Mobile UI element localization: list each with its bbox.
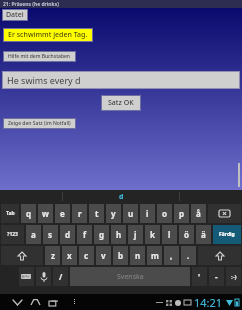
- staticText: q: [26, 208, 32, 219]
- button[interactable]: Svenska: [70, 267, 190, 286]
- button[interactable]: ö: [179, 225, 194, 244]
- staticText: k: [150, 229, 155, 240]
- staticText: :-): [231, 273, 237, 281]
- staticText: b: [118, 250, 124, 261]
- button[interactable]: b: [113, 246, 128, 265]
- button[interactable]: t: [89, 204, 104, 223]
- staticText: c: [84, 250, 89, 261]
- staticText: Datei: [6, 10, 24, 20]
- staticText: p: [179, 208, 185, 219]
- button[interactable]: k: [145, 225, 160, 244]
- button[interactable]: o: [157, 204, 172, 223]
- staticText: -: [215, 271, 218, 282]
- button[interactable]: /: [53, 267, 68, 286]
- button[interactable]: d: [60, 225, 75, 244]
- button[interactable]: ?123: [1, 225, 24, 244]
- button[interactable]: n: [130, 246, 145, 265]
- button[interactable]: Home: [26, 294, 44, 310]
- button[interactable]: Back: [8, 294, 26, 310]
- staticText: /: [59, 271, 63, 282]
- button[interactable]: y: [106, 204, 121, 223]
- staticText: t: [95, 208, 99, 219]
- button[interactable]: ': [192, 267, 207, 286]
- staticText: w: [42, 208, 49, 219]
- button[interactable]: c: [79, 246, 94, 265]
- staticText: s: [48, 229, 53, 240]
- button[interactable]: v: [96, 246, 111, 265]
- staticText: ': [198, 271, 201, 282]
- staticText: ö: [184, 229, 189, 240]
- staticText: l: [168, 229, 171, 240]
- staticText: Färdig: [219, 231, 235, 238]
- button[interactable]: Datei: [2, 9, 28, 21]
- button[interactable]: f: [77, 225, 92, 244]
- staticText: f: [83, 229, 87, 240]
- staticText: ,: [170, 250, 173, 261]
- button[interactable]: Shift: [1, 246, 43, 265]
- button[interactable]: Hilfe mit dem Buchstaben: [3, 51, 76, 62]
- staticText: ä: [201, 229, 206, 240]
- button[interactable]: Färdig: [213, 225, 241, 244]
- button[interactable]: :-): [226, 267, 241, 286]
- button[interactable]: Backspace: [208, 204, 241, 223]
- button[interactable]: e: [55, 204, 70, 223]
- button[interactable]: z: [45, 246, 60, 265]
- staticText: r: [78, 208, 82, 219]
- staticText: d: [65, 229, 71, 240]
- staticText: j: [134, 229, 137, 240]
- button[interactable]: Menu: [68, 296, 80, 308]
- button[interactable]: .: [181, 246, 196, 265]
- button[interactable]: h: [111, 225, 126, 244]
- button[interactable]: ⌨: [19, 267, 34, 286]
- staticText: v: [101, 250, 106, 261]
- staticText: Satz OK: [108, 98, 134, 108]
- staticText: 21: Präsens (he drinks): [3, 1, 59, 8]
- button[interactable]: Zeige den Satz (im Notfall): [3, 118, 76, 129]
- button[interactable]: m: [147, 246, 162, 265]
- staticText: g: [99, 229, 105, 240]
- button[interactable]: Tab: [1, 204, 19, 223]
- button[interactable]: q: [21, 204, 36, 223]
- button[interactable]: j: [128, 225, 143, 244]
- button[interactable]: ,: [164, 246, 179, 265]
- button[interactable]: g: [94, 225, 109, 244]
- staticText: Hilfe mit dem Buchstaben: [8, 53, 71, 60]
- button[interactable]: Er schwimmt jeden Tag.: [3, 28, 93, 42]
- button[interactable]: x: [62, 246, 77, 265]
- staticText: e: [60, 208, 65, 219]
- staticText: x: [67, 250, 72, 261]
- button[interactable]: ä: [196, 225, 211, 244]
- staticText: i: [146, 208, 149, 219]
- button[interactable]: å: [191, 204, 206, 223]
- staticText: 14:21: [194, 295, 223, 310]
- button[interactable]: i: [140, 204, 155, 223]
- staticText: y: [111, 208, 116, 219]
- staticText: a: [31, 229, 36, 240]
- button[interactable]: l: [162, 225, 177, 244]
- staticText: ?123: [7, 231, 18, 238]
- staticText: o: [162, 208, 167, 219]
- staticText: .: [187, 250, 190, 261]
- staticText: Tab: [6, 210, 15, 217]
- staticText: u: [128, 208, 134, 219]
- button[interactable]: a: [26, 225, 41, 244]
- staticText: d: [119, 192, 124, 202]
- staticText: å: [196, 208, 201, 219]
- staticText: z: [51, 250, 55, 261]
- button[interactable]: r: [72, 204, 87, 223]
- button[interactable]: Voice input: [36, 267, 51, 286]
- staticText: h: [116, 229, 122, 240]
- staticText: He swims every d: [7, 74, 81, 86]
- button[interactable]: Recent apps: [44, 294, 62, 310]
- staticText: n: [135, 250, 141, 261]
- button[interactable]: p: [174, 204, 189, 223]
- button[interactable]: -: [209, 267, 224, 286]
- staticText: Zeige den Satz (im Notfall): [8, 120, 71, 127]
- button[interactable]: Shift: [198, 246, 241, 265]
- button[interactable]: Satz OK: [101, 95, 141, 111]
- button[interactable]: w: [38, 204, 53, 223]
- button[interactable]: s: [43, 225, 58, 244]
- button[interactable]: u: [123, 204, 138, 223]
- button[interactable]: He swims every d: [2, 71, 240, 89]
